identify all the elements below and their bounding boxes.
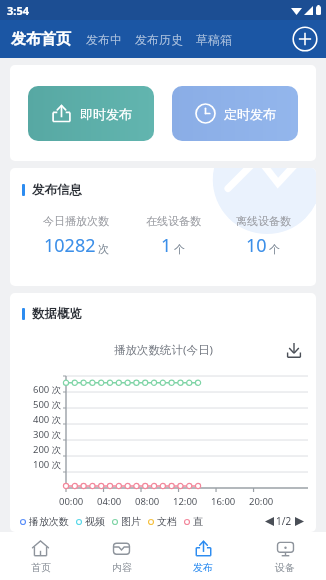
- staticText: 内容: [112, 561, 132, 574]
- button[interactable]: 即时发布: [28, 86, 154, 141]
- staticText: 12:00: [173, 495, 198, 508]
- staticText: 次: [98, 242, 109, 256]
- button[interactable]: Download: [284, 340, 304, 360]
- staticText: 直: [193, 515, 203, 528]
- staticText: 图片: [121, 515, 141, 528]
- staticText: 500 次: [33, 398, 62, 411]
- staticText: 20:00: [249, 495, 274, 508]
- staticText: 00:00: [59, 495, 84, 508]
- staticText: 设备: [275, 561, 295, 574]
- staticText: 200 次: [33, 443, 62, 456]
- staticText: 播放次数: [29, 515, 69, 528]
- staticText: 视频: [85, 515, 105, 528]
- staticText: 在线设备数: [146, 214, 201, 228]
- button[interactable]: 发布首页: [10, 30, 72, 49]
- staticText: 发布历史: [135, 32, 183, 47]
- staticText: 数据概览: [32, 306, 82, 322]
- staticText: 定时发布: [224, 106, 276, 122]
- staticText: 04:00: [97, 495, 122, 508]
- staticText: 16:00: [211, 495, 236, 508]
- staticText: 1/2: [276, 514, 292, 528]
- staticText: 个: [174, 242, 185, 256]
- button[interactable]: 视频: [76, 515, 105, 528]
- staticText: 发布信息: [32, 182, 82, 198]
- button[interactable]: 发布: [162, 532, 244, 580]
- button[interactable]: 文档: [148, 515, 177, 528]
- button[interactable]: Add: [292, 26, 318, 52]
- staticText: 1: [161, 233, 172, 258]
- staticText: 个: [269, 242, 280, 256]
- button[interactable]: 直: [184, 515, 203, 528]
- button[interactable]: Previous: [262, 514, 276, 528]
- staticText: 离线设备数: [236, 214, 291, 228]
- button[interactable]: 发布历史: [135, 32, 183, 47]
- staticText: 10: [246, 233, 267, 258]
- staticText: 首页: [31, 561, 51, 574]
- staticText: 今日播放次数: [43, 214, 109, 228]
- staticText: 发布: [193, 561, 213, 574]
- staticText: 播放次数统计(今日): [114, 342, 213, 358]
- staticText: 400 次: [33, 413, 62, 426]
- button[interactable]: 草稿箱: [196, 32, 232, 47]
- staticText: 3:54: [7, 3, 29, 18]
- button[interactable]: 定时发布: [172, 86, 298, 141]
- staticText: 300 次: [33, 428, 62, 441]
- staticText: 草稿箱: [196, 32, 232, 47]
- button[interactable]: Next: [292, 514, 306, 528]
- button[interactable]: 播放次数: [20, 515, 69, 528]
- button[interactable]: 内容: [81, 532, 162, 580]
- staticText: 08:00: [135, 495, 160, 508]
- button[interactable]: 设备: [244, 532, 326, 580]
- staticText: 发布首页: [11, 30, 71, 49]
- staticText: 即时发布: [80, 106, 132, 122]
- button[interactable]: 首页: [0, 532, 81, 580]
- staticText: 10282: [44, 233, 96, 258]
- button[interactable]: 发布中: [86, 32, 122, 47]
- staticText: 发布中: [86, 32, 122, 47]
- staticText: 600 次: [33, 383, 62, 396]
- staticText: 文档: [157, 515, 177, 528]
- staticText: 100 次: [33, 458, 62, 471]
- button[interactable]: 图片: [112, 515, 141, 528]
